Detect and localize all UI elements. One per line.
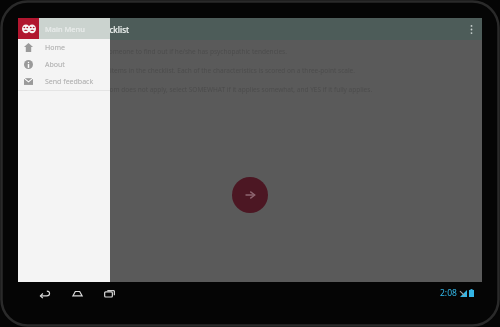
staticText: 2:08 <box>440 287 457 299</box>
staticText: Use this checklist on someone to find ou… <box>42 47 287 56</box>
staticText: Main Menu <box>45 24 85 34</box>
staticText: Send feedback <box>45 77 94 87</box>
button[interactable]: Next <box>232 177 268 213</box>
staticText: Psychopathy Checklist <box>44 24 130 35</box>
button[interactable]: Back <box>34 282 56 304</box>
button[interactable]: Home <box>66 282 88 304</box>
button[interactable]: About <box>18 56 110 73</box>
staticText: Home <box>45 43 65 53</box>
button[interactable]: More options <box>460 18 482 40</box>
staticText: Select NO if the symptom does not apply,… <box>42 85 373 94</box>
button[interactable]: Recent apps <box>98 282 120 304</box>
button[interactable]: Home <box>18 39 110 56</box>
staticText: There are 20 different items in the chec… <box>42 66 355 75</box>
staticText: About <box>45 60 65 70</box>
button[interactable]: Main Menu <box>18 18 110 39</box>
button[interactable]: Send feedback <box>18 73 110 90</box>
button[interactable]: Open navigation drawer <box>18 18 40 40</box>
